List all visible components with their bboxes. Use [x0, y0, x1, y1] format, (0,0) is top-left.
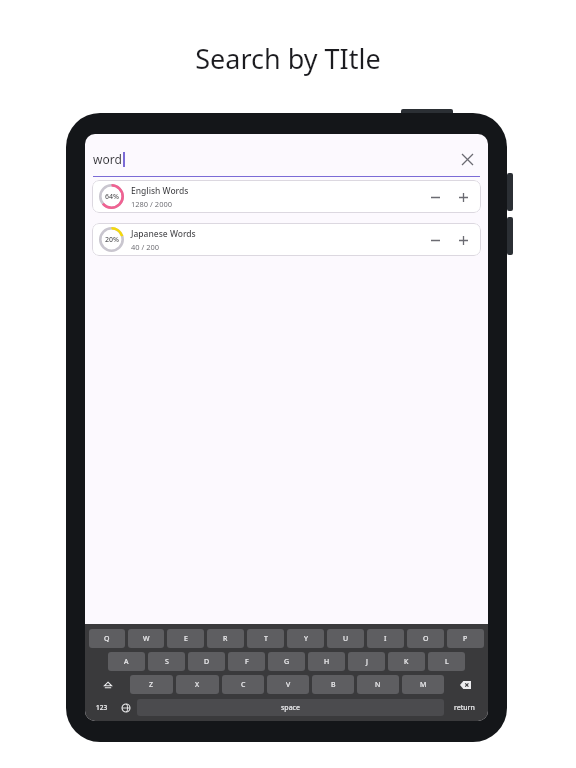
staticText: I	[384, 634, 387, 644]
staticText: H	[324, 657, 330, 667]
button[interactable]: G	[268, 652, 305, 671]
button[interactable]: V	[267, 675, 309, 694]
staticText: T	[264, 634, 268, 644]
staticText: 64%	[105, 192, 119, 202]
staticText: Z	[149, 680, 154, 690]
staticText: C	[241, 680, 246, 690]
staticText: E	[184, 634, 188, 644]
button[interactable]: L	[428, 652, 465, 671]
button[interactable]: M	[402, 675, 444, 694]
staticText: G	[284, 657, 290, 667]
staticText: P	[463, 634, 468, 644]
button[interactable]: U	[327, 629, 364, 648]
button[interactable]: I	[367, 629, 404, 648]
staticText: Q	[104, 634, 110, 644]
button[interactable]: B	[312, 675, 354, 694]
button[interactable]: Switch keyboard	[115, 699, 137, 716]
staticText: L	[445, 657, 449, 667]
staticText: Japanese Words	[131, 228, 196, 240]
staticText: Search by TItle	[195, 40, 381, 77]
button[interactable]: F	[228, 652, 265, 671]
button[interactable]: Increase English Words	[452, 186, 474, 208]
button[interactable]: R	[207, 629, 244, 648]
staticText: W	[143, 634, 150, 644]
button[interactable]: E	[167, 629, 204, 648]
button[interactable]: Q	[89, 629, 125, 648]
staticText: V	[286, 680, 291, 690]
button[interactable]: Y	[287, 629, 324, 648]
staticText: B	[331, 680, 336, 690]
staticText: K	[404, 657, 409, 667]
button[interactable]: Backspace	[447, 675, 484, 694]
button[interactable]: S	[148, 652, 185, 671]
button[interactable]: K	[388, 652, 425, 671]
staticText: A	[124, 657, 129, 667]
staticText: D	[204, 657, 210, 667]
staticText: R	[223, 634, 228, 644]
staticText: O	[423, 634, 429, 644]
button[interactable]: W	[128, 629, 164, 648]
button[interactable]: 20%	[92, 223, 481, 256]
button[interactable]: Shift	[89, 675, 127, 694]
button[interactable]: 64%	[92, 180, 481, 213]
staticText: N	[375, 680, 381, 690]
staticText: U	[343, 634, 349, 644]
staticText: J	[366, 657, 368, 667]
button[interactable]: return	[444, 699, 484, 716]
staticText: return	[454, 703, 475, 713]
button[interactable]: J	[348, 652, 385, 671]
staticText: F	[245, 657, 249, 667]
button[interactable]: Z	[130, 675, 173, 694]
staticText: 123	[96, 703, 108, 712]
button[interactable]: O	[407, 629, 444, 648]
staticText: X	[195, 680, 200, 690]
button[interactable]: space	[137, 699, 444, 716]
button[interactable]: Increase Japanese Words	[452, 229, 474, 251]
staticText: 40 / 200	[131, 242, 160, 252]
staticText: word	[93, 151, 122, 167]
button[interactable]: Decrease Japanese Words	[424, 229, 446, 251]
button[interactable]: 123	[89, 699, 115, 716]
button[interactable]: C	[222, 675, 264, 694]
staticText: S	[165, 657, 169, 667]
staticText: space	[281, 703, 300, 713]
staticText: Y	[304, 634, 308, 644]
staticText: 1280 / 2000	[131, 199, 173, 209]
staticText: 20%	[105, 235, 119, 245]
staticText: M	[420, 680, 427, 690]
button[interactable]: T	[247, 629, 284, 648]
button[interactable]: P	[447, 629, 484, 648]
button[interactable]: D	[188, 652, 225, 671]
staticText: English Words	[131, 185, 189, 197]
button[interactable]: A	[108, 652, 145, 671]
button[interactable]: Decrease English Words	[424, 186, 446, 208]
button[interactable]: X	[176, 675, 219, 694]
button[interactable]: Clear search	[454, 146, 480, 172]
button[interactable]: H	[308, 652, 345, 671]
button[interactable]: N	[357, 675, 399, 694]
